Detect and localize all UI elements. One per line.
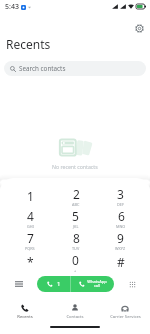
button[interactable]: Search contacts	[4, 61, 146, 76]
staticText: WXYZ	[115, 246, 126, 251]
staticText: TUV	[72, 246, 80, 251]
staticText: 3	[117, 186, 124, 202]
button[interactable]: 3	[98, 185, 143, 207]
button[interactable]: Contacts	[50, 300, 100, 324]
staticText: 1	[27, 188, 34, 204]
button[interactable]: 1	[37, 276, 70, 292]
staticText: ABC	[72, 202, 80, 207]
button[interactable]: 2	[53, 185, 98, 207]
staticText: 0	[72, 252, 79, 268]
button[interactable]: WhatsApp call	[71, 276, 114, 292]
staticText: Recents	[17, 314, 33, 320]
staticText: Recents	[6, 36, 51, 52]
staticText: Search contacts	[19, 64, 66, 73]
button[interactable]: 5	[53, 207, 98, 229]
button[interactable]: Carrier Services	[100, 300, 150, 324]
staticText: *	[27, 254, 34, 270]
staticText: 8	[73, 230, 80, 246]
button[interactable]: More options	[0, 275, 37, 293]
button[interactable]: 4	[7, 207, 53, 229]
staticText: PQRS	[25, 246, 35, 251]
staticText: #	[117, 254, 125, 270]
staticText: +	[74, 268, 77, 273]
staticText: 6	[118, 208, 125, 224]
button[interactable]: 1	[7, 185, 53, 207]
button[interactable]: 9	[98, 229, 143, 251]
staticText: Carrier Services	[110, 314, 141, 320]
button[interactable]: Recents	[0, 300, 50, 324]
button[interactable]: 6	[98, 207, 143, 229]
staticText: No recent contacts	[52, 163, 98, 170]
staticText: 7	[27, 230, 34, 246]
staticText: WhatsApp call	[87, 279, 107, 289]
staticText: 2	[73, 186, 80, 202]
staticText: 4	[27, 208, 34, 224]
button[interactable]: Settings	[131, 20, 148, 37]
staticText: GHI	[27, 224, 34, 229]
button[interactable]: 0	[53, 251, 98, 273]
staticText: 1	[57, 280, 61, 288]
button[interactable]: 7	[7, 229, 53, 251]
button[interactable]: #	[98, 251, 143, 273]
staticText: Contacts	[66, 314, 84, 320]
staticText: MNO	[116, 224, 126, 229]
staticText: DEF	[117, 202, 124, 207]
button[interactable]: Keypad	[114, 275, 150, 293]
staticText: 9	[117, 230, 124, 246]
staticText: 5	[72, 208, 79, 224]
button[interactable]: 8	[53, 229, 98, 251]
staticText: 5:43	[5, 2, 19, 12]
staticText: JKL	[73, 224, 79, 229]
button[interactable]: *	[7, 251, 53, 273]
